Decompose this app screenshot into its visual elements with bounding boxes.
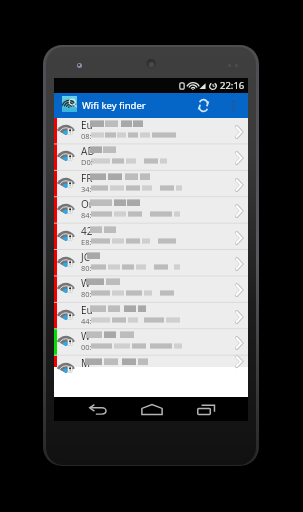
staticText: 42 bbox=[81, 224, 93, 238]
staticText: W bbox=[81, 329, 91, 343]
staticText: 00: bbox=[81, 342, 92, 352]
staticText: 44: bbox=[81, 316, 92, 326]
staticText: D0: bbox=[81, 157, 93, 167]
staticText: FR bbox=[81, 171, 93, 185]
button[interactable]: Or bbox=[54, 197, 248, 225]
button[interactable]: Home bbox=[139, 397, 165, 421]
staticText: Or bbox=[81, 197, 93, 211]
staticText: W bbox=[81, 276, 91, 290]
staticText: Eu bbox=[81, 303, 93, 317]
button[interactable]: FR bbox=[54, 171, 248, 199]
staticText: Eu bbox=[81, 118, 93, 132]
staticText: 22:16 bbox=[220, 79, 245, 92]
staticText: 80: bbox=[81, 289, 92, 299]
staticText: E8: bbox=[81, 237, 92, 247]
button[interactable]: Eu bbox=[54, 303, 248, 331]
button[interactable]: Refresh bbox=[191, 93, 216, 118]
staticText: M bbox=[81, 356, 91, 367]
staticText: 84: bbox=[81, 210, 92, 220]
button[interactable]: More options bbox=[224, 93, 243, 118]
button[interactable]: AD bbox=[54, 144, 248, 172]
staticText: AD bbox=[81, 144, 95, 158]
button[interactable]: Eu bbox=[54, 118, 248, 146]
button[interactable]: 42 bbox=[54, 224, 248, 252]
button[interactable]: Recents bbox=[193, 397, 219, 421]
button[interactable]: Back bbox=[85, 397, 111, 421]
button[interactable]: W bbox=[54, 276, 248, 304]
staticText: JC bbox=[81, 250, 91, 264]
button[interactable]: JC bbox=[54, 250, 248, 278]
staticText: Wifi key finder bbox=[82, 99, 146, 112]
staticText: 08: bbox=[81, 131, 92, 141]
button[interactable]: M bbox=[54, 356, 248, 367]
staticText: 80: bbox=[81, 263, 92, 273]
button[interactable]: W bbox=[54, 329, 248, 357]
staticText: 34: bbox=[81, 184, 92, 194]
